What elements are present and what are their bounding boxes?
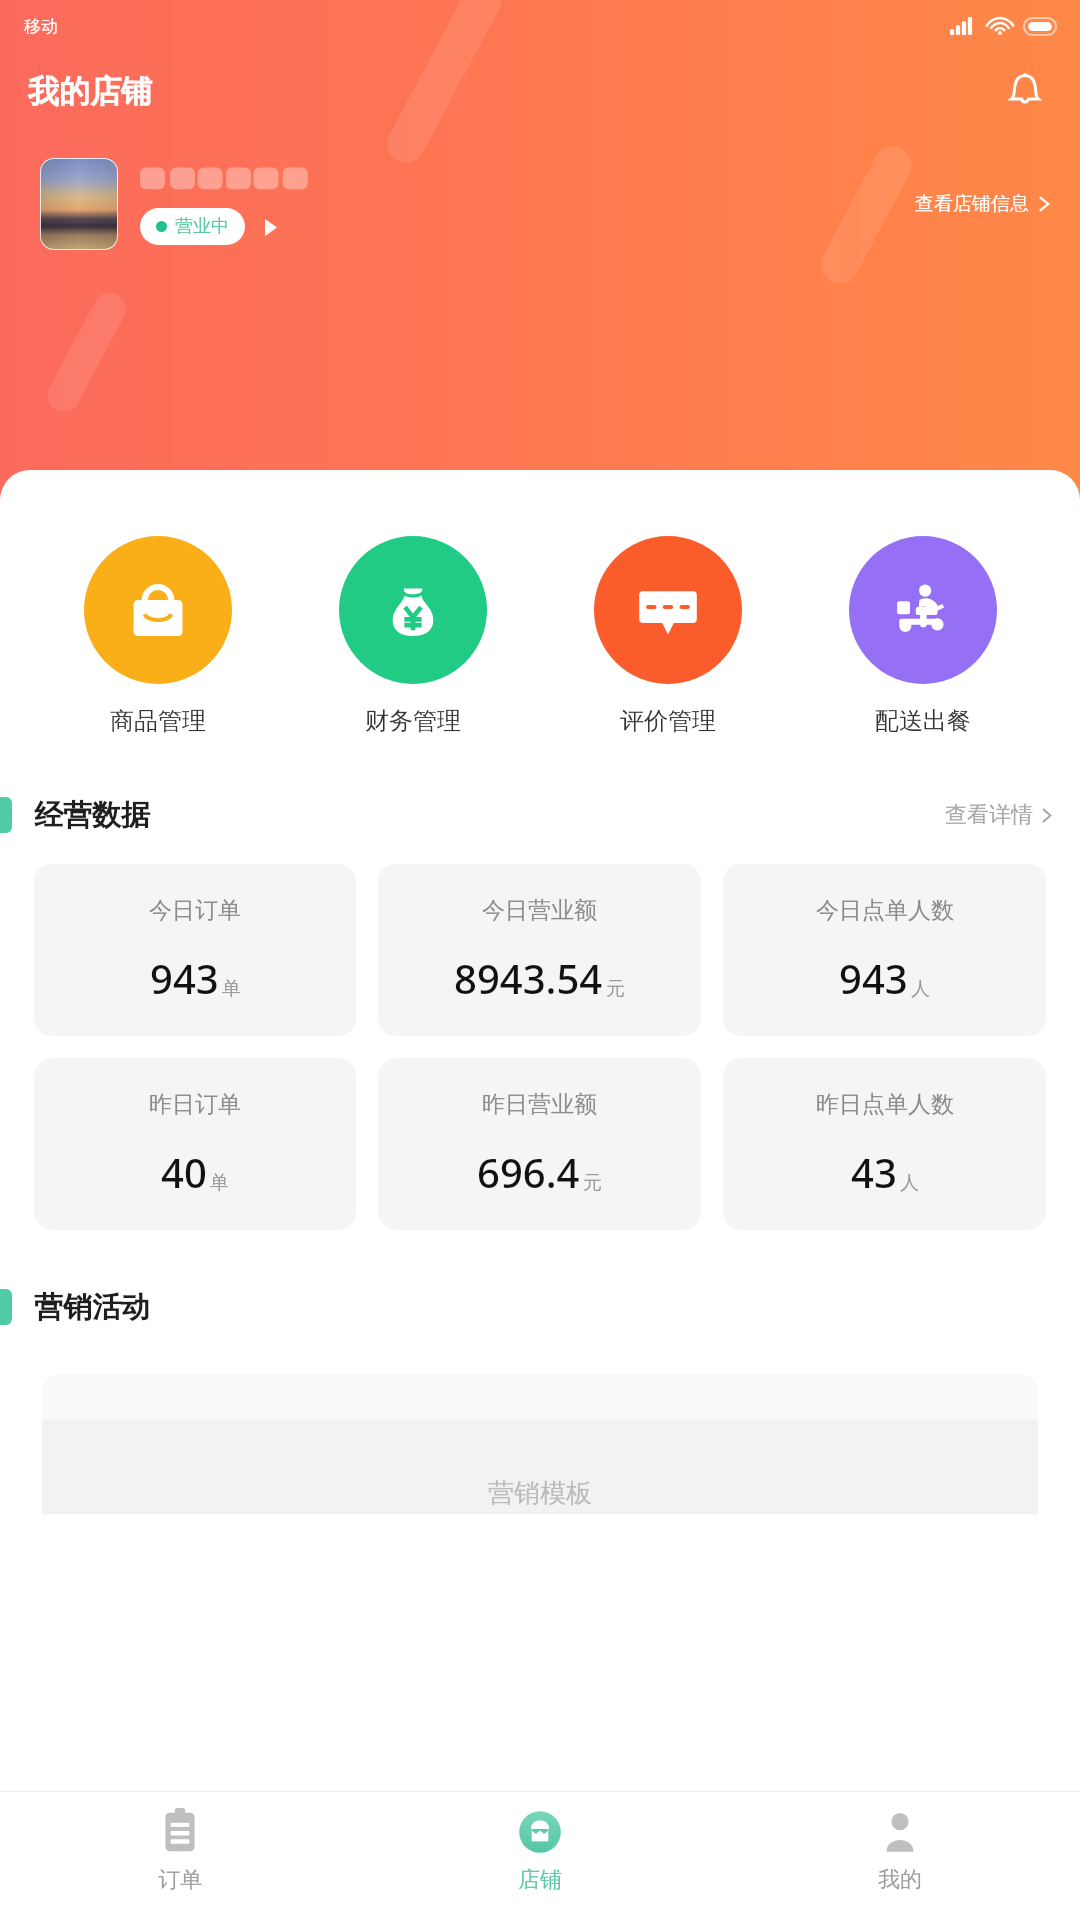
staticText: 我的 xyxy=(878,1866,922,1894)
staticText: 元 xyxy=(583,1171,602,1195)
button[interactable]: 昨日点单人数 xyxy=(723,1058,1046,1230)
staticText: 商品管理 xyxy=(110,706,206,736)
button[interactable]: 今日营业额 xyxy=(378,864,701,1036)
button[interactable]: Notifications xyxy=(996,62,1054,120)
button[interactable]: 今日点单人数 xyxy=(723,864,1046,1036)
button[interactable]: Shop photo xyxy=(40,158,118,250)
button[interactable]: 营销模板 xyxy=(42,1374,1038,1514)
staticText: 40 xyxy=(161,1145,207,1199)
staticText: 696.4 xyxy=(477,1145,580,1199)
staticText: 营业中 xyxy=(175,215,229,238)
staticText: 经营数据 xyxy=(34,797,150,834)
button[interactable]: 查看详情 xyxy=(935,795,1062,835)
staticText: 943 xyxy=(839,951,908,1005)
staticText: 今日订单 xyxy=(149,896,241,925)
button[interactable]: 财务管理 xyxy=(285,532,540,740)
staticText: 营销模板 xyxy=(488,1477,592,1510)
staticText: 943 xyxy=(150,951,219,1005)
button[interactable]: 店铺 xyxy=(360,1792,720,1920)
staticText: 人 xyxy=(911,977,930,1001)
staticText: 我的店铺 xyxy=(28,72,152,111)
staticText: 单 xyxy=(210,1171,229,1195)
staticText: 今日营业额 xyxy=(482,896,597,925)
staticText: 元 xyxy=(606,977,625,1001)
button[interactable]: 昨日营业额 xyxy=(378,1058,701,1230)
staticText: 单 xyxy=(222,977,241,1001)
button[interactable]: Toggle open status xyxy=(255,212,285,242)
button[interactable]: 营业中 xyxy=(140,208,245,245)
button[interactable]: 配送出餐 xyxy=(795,532,1050,740)
staticText: 配送出餐 xyxy=(875,706,971,736)
staticText: 人 xyxy=(900,1171,919,1195)
staticText: 评价管理 xyxy=(620,706,716,736)
staticText: 店铺 xyxy=(518,1866,562,1894)
button[interactable]: 我的 xyxy=(720,1792,1080,1920)
staticText: 43 xyxy=(851,1145,897,1199)
staticText: 昨日订单 xyxy=(149,1090,241,1119)
staticText: 查看店铺信息 xyxy=(915,192,1029,216)
button[interactable]: 商品管理 xyxy=(30,532,285,740)
staticText: 营销活动 xyxy=(34,1289,150,1326)
staticText: 今日点单人数 xyxy=(816,896,954,925)
staticText: 订单 xyxy=(158,1866,202,1894)
button[interactable]: 订单 xyxy=(0,1792,360,1920)
staticText: 查看详情 xyxy=(945,801,1033,829)
button[interactable]: 昨日订单 xyxy=(34,1058,356,1230)
staticText: 昨日营业额 xyxy=(482,1090,597,1119)
staticText: 8943.54 xyxy=(454,951,603,1005)
button[interactable]: 今日订单 xyxy=(34,864,356,1036)
button[interactable]: 评价管理 xyxy=(540,532,795,740)
button[interactable]: 查看店铺信息 xyxy=(911,186,1054,222)
staticText: 昨日点单人数 xyxy=(816,1090,954,1119)
staticText: 财务管理 xyxy=(365,706,461,736)
staticText: 移动 xyxy=(24,16,58,37)
